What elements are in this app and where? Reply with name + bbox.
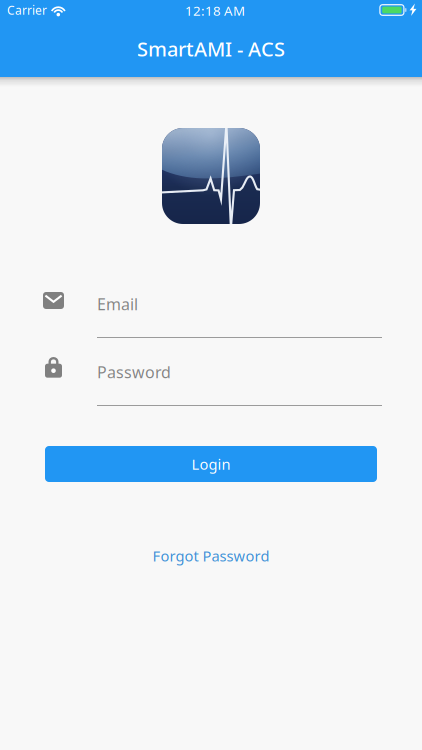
staticText: Carrier [7, 2, 47, 18]
staticText: SmartAMI - ACS [137, 35, 285, 62]
staticText: Password [97, 361, 171, 383]
button[interactable]: Forgot Password [152, 546, 269, 565]
staticText: Login [191, 454, 230, 474]
button[interactable]: Login [45, 446, 377, 482]
staticText: 12:18 AM [185, 2, 245, 19]
staticText: Forgot Password [152, 546, 269, 565]
staticText: Email [97, 293, 138, 315]
